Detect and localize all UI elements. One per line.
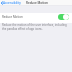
button[interactable]: Back bbox=[0, 0, 22, 4]
staticText: Reduce Motion bbox=[26, 0, 48, 4]
staticText: Reduce Motion bbox=[2, 15, 23, 19]
other: Back bbox=[1, 1, 3, 4]
staticText: Accessibility bbox=[3, 0, 21, 4]
staticText: Reduce the motion of the user interface,… bbox=[2, 23, 70, 31]
button[interactable]: Reduce Motion bbox=[0, 13, 72, 23]
